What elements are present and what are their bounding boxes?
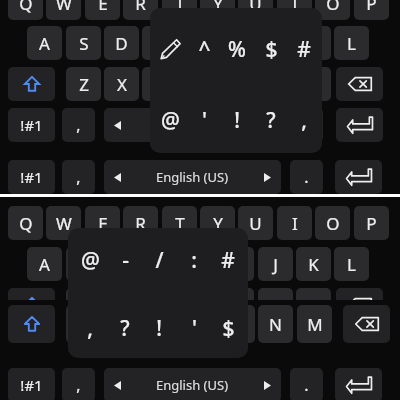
button[interactable]: Q [8, 206, 43, 240]
button[interactable]: V [181, 305, 216, 343]
button[interactable]: Z [66, 305, 101, 343]
button[interactable]: X [104, 305, 139, 343]
button[interactable]: , [62, 368, 95, 400]
button[interactable]: Y [200, 206, 235, 240]
button[interactable]: N [258, 288, 293, 322]
button[interactable]: K [296, 26, 331, 60]
button[interactable]: G [181, 26, 216, 60]
button[interactable]: S [66, 247, 101, 281]
button[interactable]: D [104, 26, 139, 60]
button[interactable]: # [289, 34, 319, 64]
button[interactable]: English (US) [104, 160, 281, 194]
button[interactable]: S [66, 26, 101, 60]
button[interactable]: P [354, 206, 389, 240]
button[interactable]: M [297, 305, 332, 343]
button[interactable]: L [334, 247, 369, 281]
button[interactable]: I [277, 0, 312, 20]
button[interactable]: Shift [8, 288, 55, 322]
button[interactable]: Enter [336, 368, 383, 400]
button[interactable]: @ [75, 245, 105, 275]
button[interactable]: ? [110, 313, 140, 343]
button[interactable]: : [179, 245, 209, 275]
button[interactable]: W [46, 206, 81, 240]
button[interactable]: Y [200, 0, 235, 20]
button[interactable]: X [104, 67, 139, 101]
button[interactable]: R [123, 206, 158, 240]
button[interactable]: !#1 [8, 368, 55, 400]
button[interactable]: - [110, 245, 140, 275]
button[interactable]: E [85, 206, 120, 240]
button[interactable]: A [27, 26, 62, 60]
button[interactable]: G [181, 247, 216, 281]
button[interactable]: R [123, 0, 158, 20]
button[interactable]: N [258, 305, 293, 343]
button[interactable]: ? [256, 105, 286, 135]
button[interactable]: U [238, 0, 273, 20]
button[interactable]: Enter [335, 368, 382, 400]
button[interactable]: B [219, 288, 254, 322]
button[interactable]: F [142, 247, 177, 281]
button[interactable]: O [315, 0, 350, 20]
button[interactable]: . [290, 108, 323, 142]
button[interactable]: Q [8, 0, 43, 20]
button[interactable]: Enter [335, 160, 382, 194]
button[interactable]: . [290, 368, 323, 400]
button[interactable]: # [213, 245, 243, 275]
button[interactable]: , [62, 368, 95, 400]
button[interactable]: Shift [8, 305, 55, 343]
button[interactable]: / [144, 245, 174, 275]
button[interactable]: E [85, 0, 120, 20]
button[interactable]: English (US) [104, 368, 281, 400]
button[interactable]: !#1 [8, 368, 55, 400]
button[interactable]: U [238, 206, 273, 240]
button[interactable]: , [75, 313, 105, 343]
button[interactable]: H [219, 26, 254, 60]
button[interactable]: F [142, 26, 177, 60]
button[interactable]: K [296, 247, 331, 281]
button[interactable]: !#1 [8, 160, 55, 194]
button[interactable]: X [104, 288, 139, 322]
button[interactable]: . [290, 368, 323, 400]
button[interactable]: , [62, 160, 95, 194]
button[interactable]: ! [144, 313, 174, 343]
button[interactable]: Backspace [343, 305, 390, 343]
button[interactable]: C [142, 288, 177, 322]
button[interactable]: M [296, 288, 331, 322]
button[interactable]: T [162, 206, 197, 240]
button[interactable]: H [219, 247, 254, 281]
button[interactable]: V [181, 288, 216, 322]
button[interactable]: $ [213, 313, 243, 343]
button[interactable]: Z [66, 288, 101, 322]
button[interactable]: . [290, 160, 323, 194]
button[interactable]: Handwriting [159, 38, 181, 60]
button[interactable]: O [315, 206, 350, 240]
button[interactable]: B [220, 305, 255, 343]
button[interactable]: L [334, 26, 369, 60]
button[interactable]: J [258, 247, 293, 281]
button[interactable]: W [46, 0, 81, 20]
button[interactable]: !#1 [8, 108, 55, 142]
button[interactable]: % [222, 34, 252, 64]
button[interactable]: Shift [8, 67, 55, 101]
button[interactable]: Backspace [336, 288, 383, 322]
button[interactable]: A [27, 247, 62, 281]
button[interactable]: Enter [336, 108, 383, 142]
button[interactable]: C [142, 67, 177, 101]
button[interactable]: , [289, 105, 319, 135]
button[interactable]: English (US) [104, 368, 281, 400]
button[interactable]: C [143, 305, 178, 343]
button[interactable]: T [162, 0, 197, 20]
button[interactable]: , [62, 108, 95, 142]
button[interactable]: ! [222, 105, 252, 135]
button[interactable]: Z [66, 67, 101, 101]
button[interactable]: P [354, 0, 389, 20]
button[interactable]: I [277, 206, 312, 240]
button[interactable]: ^ [189, 34, 219, 64]
button[interactable]: ' [179, 313, 209, 343]
button[interactable]: ' [189, 105, 219, 135]
button[interactable]: English (US) [104, 108, 281, 142]
button[interactable]: @ [155, 105, 185, 135]
